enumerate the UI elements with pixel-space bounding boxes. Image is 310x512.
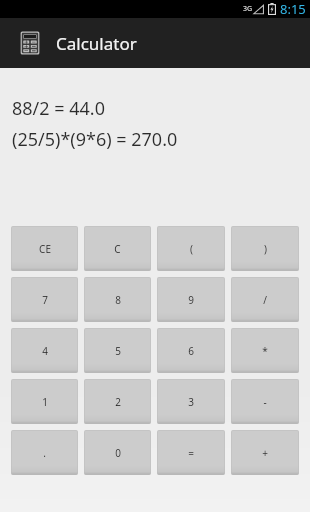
button[interactable]: 8 xyxy=(84,277,151,322)
staticText: 4 xyxy=(42,344,48,358)
button[interactable]: . xyxy=(11,430,78,475)
button[interactable]: ( xyxy=(157,226,225,271)
staticText: 88/2 = 44.0 xyxy=(12,96,105,121)
button[interactable]: C xyxy=(84,226,151,271)
button[interactable]: 7 xyxy=(11,277,78,322)
staticText: 6 xyxy=(188,344,194,358)
staticText: 0 xyxy=(115,446,121,460)
button[interactable]: CE xyxy=(11,226,78,271)
staticText: ) xyxy=(264,242,267,256)
staticText: 9 xyxy=(188,293,194,307)
staticText: 3 xyxy=(188,395,194,409)
button[interactable]: * xyxy=(231,328,299,373)
button[interactable]: / xyxy=(231,277,299,322)
button[interactable]: - xyxy=(231,379,299,424)
staticText: 7 xyxy=(42,293,48,307)
staticText: + xyxy=(262,446,268,460)
button[interactable]: = xyxy=(157,430,225,475)
staticText: 2 xyxy=(115,395,121,409)
button[interactable]: 9 xyxy=(157,277,225,322)
staticText: 5 xyxy=(115,344,121,358)
button[interactable]: 5 xyxy=(84,328,151,373)
staticText: 3G xyxy=(243,4,253,14)
staticText: = xyxy=(188,446,194,460)
button[interactable]: 1 xyxy=(11,379,78,424)
button[interactable]: 2 xyxy=(84,379,151,424)
staticText: * xyxy=(262,344,268,358)
staticText: / xyxy=(263,293,267,307)
staticText: 8 xyxy=(115,293,121,307)
other: Calculator app icon xyxy=(17,30,43,56)
staticText: CE xyxy=(39,242,51,256)
button[interactable]: 0 xyxy=(84,430,151,475)
button[interactable]: 4 xyxy=(11,328,78,373)
staticText: ( xyxy=(190,242,193,256)
staticText: . xyxy=(43,446,46,460)
staticText: 8:15 xyxy=(280,0,306,18)
staticText: (25/5)*(9*6) = 270.0 xyxy=(12,127,178,152)
staticText: - xyxy=(263,395,267,409)
button[interactable]: 3 xyxy=(157,379,225,424)
staticText: Calculator xyxy=(56,32,137,55)
button[interactable]: ) xyxy=(231,226,299,271)
staticText: C xyxy=(114,242,121,256)
button[interactable]: 6 xyxy=(157,328,225,373)
button[interactable]: + xyxy=(231,430,299,475)
staticText: 1 xyxy=(42,395,48,409)
